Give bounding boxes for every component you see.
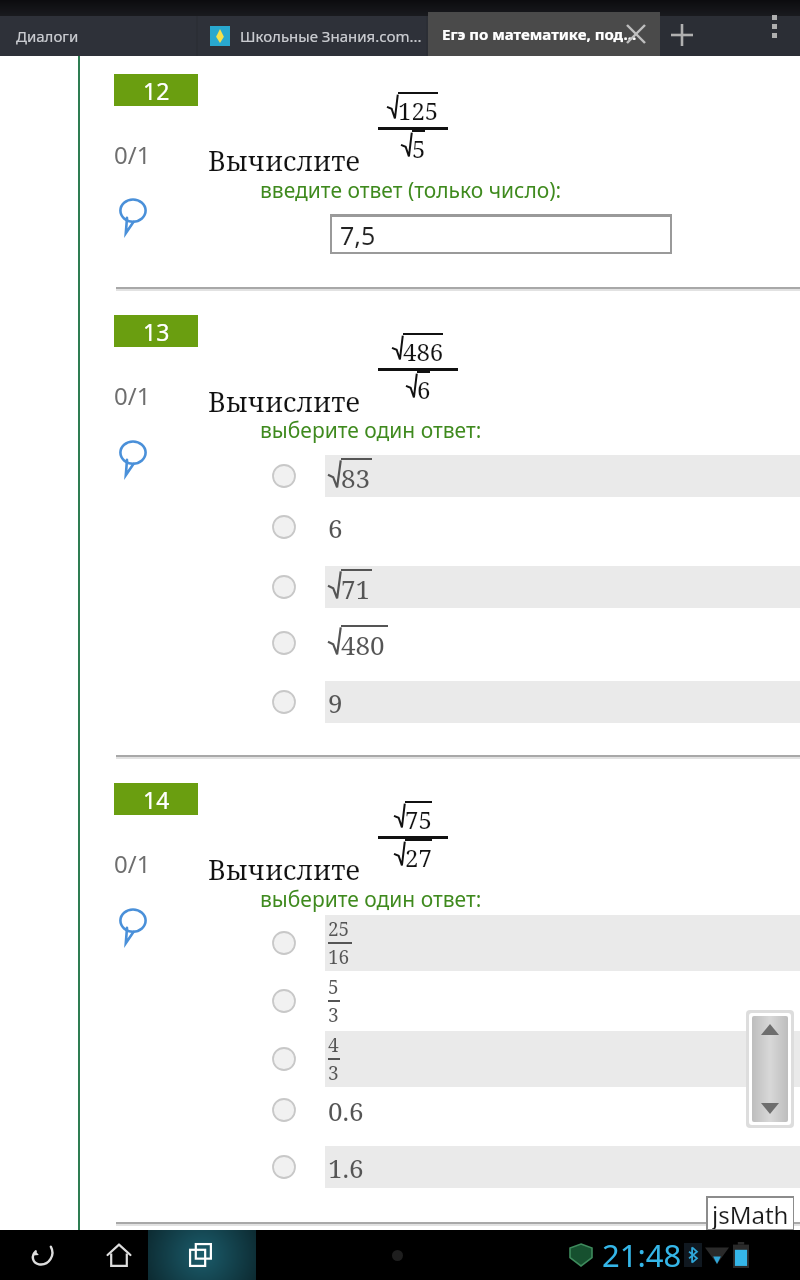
staticText: 3 [328,1002,339,1028]
staticText: 16 [328,944,350,970]
staticText: Диалоги [16,26,79,46]
button[interactable]: 7,5 [330,214,672,254]
staticText: jsMath [712,1198,789,1229]
button[interactable]: Comment [118,908,148,944]
button[interactable]: Comment [118,440,148,476]
button[interactable]: 14 [114,783,198,815]
staticText: 9 [328,685,343,720]
button[interactable]: 83 [258,455,800,497]
staticText: 480 [341,627,385,662]
button[interactable]: 1.6 [258,1146,800,1188]
staticText: 1.6 [328,1150,364,1185]
button[interactable]: 0.6 [258,1089,800,1131]
button[interactable]: 25 [258,915,800,971]
button[interactable]: Comment [118,198,148,234]
staticText: 21:48 [602,1234,682,1276]
staticText: Вычислите [208,851,360,888]
staticText: 71 [341,571,371,606]
staticText: 6 [328,510,343,545]
button[interactable]: Back [14,1230,72,1280]
staticText: 5 [328,974,339,1000]
staticText: 5 [412,132,426,165]
staticText: 7,5 [340,218,376,252]
staticText: 3 [328,1060,339,1086]
staticText: выберите один ответ: [260,885,482,914]
staticText: 0/1 [114,379,151,412]
button[interactable]: New tab [656,14,708,56]
button[interactable]: More options [752,4,796,48]
staticText: введите ответ (только число): [260,176,562,205]
button[interactable]: 480 [258,622,800,664]
staticText: 12 [143,75,170,106]
button[interactable]: 9 [258,681,800,723]
button[interactable]: 6 [258,506,800,548]
button[interactable]: Close tab [618,16,654,52]
staticText: 125 [398,94,439,127]
button[interactable]: Диалоги [0,16,196,56]
staticText: 14 [143,784,170,815]
staticText: 6 [417,373,431,406]
button[interactable]: Recent apps [172,1230,230,1280]
staticText: Школьные Знания.com... [240,26,422,46]
button[interactable]: Scroll [746,1010,794,1128]
button[interactable]: Школьные Знания.com... [198,16,426,56]
staticText: Вычислите [208,142,360,179]
staticText: 4 [328,1032,339,1058]
button[interactable]: 71 [258,566,800,608]
staticText: 13 [143,316,170,347]
button[interactable]: jsMath [706,1196,794,1230]
button[interactable]: Егэ по математике, под... [428,12,660,56]
staticText: 0/1 [114,138,151,171]
button[interactable]: 12 [114,74,198,106]
button[interactable]: 4 [258,1031,800,1087]
staticText: 75 [405,803,432,836]
staticText: выберите один ответ: [260,416,482,445]
staticText: 0.6 [328,1093,364,1128]
staticText: Вычислите [208,383,360,420]
staticText: 25 [328,916,350,942]
staticText: 486 [403,335,444,368]
staticText: 27 [405,841,432,874]
button[interactable]: 5 [258,973,800,1029]
button[interactable]: 13 [114,315,198,347]
staticText: Егэ по математике, под... [442,24,637,44]
staticText: 0/1 [114,847,151,880]
button[interactable]: Home [90,1230,148,1280]
staticText: 83 [341,460,371,495]
